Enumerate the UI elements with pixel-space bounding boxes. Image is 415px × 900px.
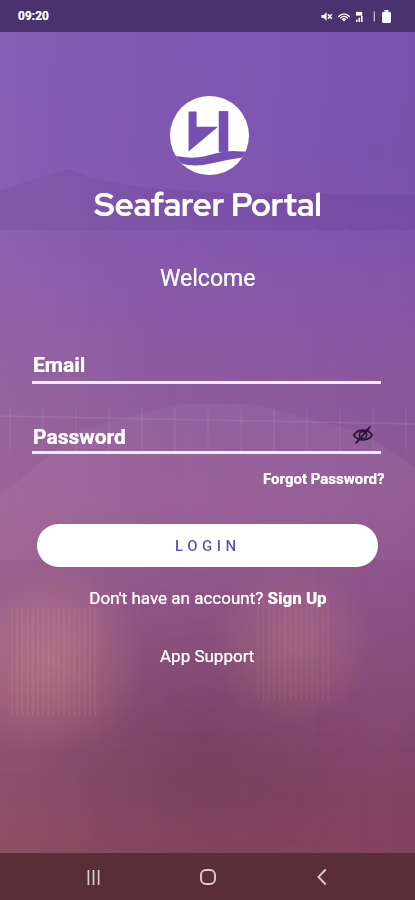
button[interactable]: Don't have an account? Sign Up	[89, 588, 327, 608]
staticText: 09:20	[18, 9, 49, 23]
staticText: Password	[33, 425, 126, 450]
button[interactable]: Forgot Password?	[263, 470, 385, 488]
staticText: Email	[33, 353, 86, 378]
staticText: LOGIN	[175, 537, 241, 555]
button[interactable]: App Support	[160, 646, 255, 666]
button[interactable]: Show password	[348, 420, 378, 450]
staticText: Welcome	[160, 265, 256, 292]
button[interactable]: Home	[186, 855, 230, 899]
staticText: Seafarer Portal	[94, 183, 322, 226]
button[interactable]: Recents	[71, 855, 115, 899]
button[interactable]: Back	[300, 855, 344, 899]
button[interactable]: LOGIN	[37, 524, 378, 567]
